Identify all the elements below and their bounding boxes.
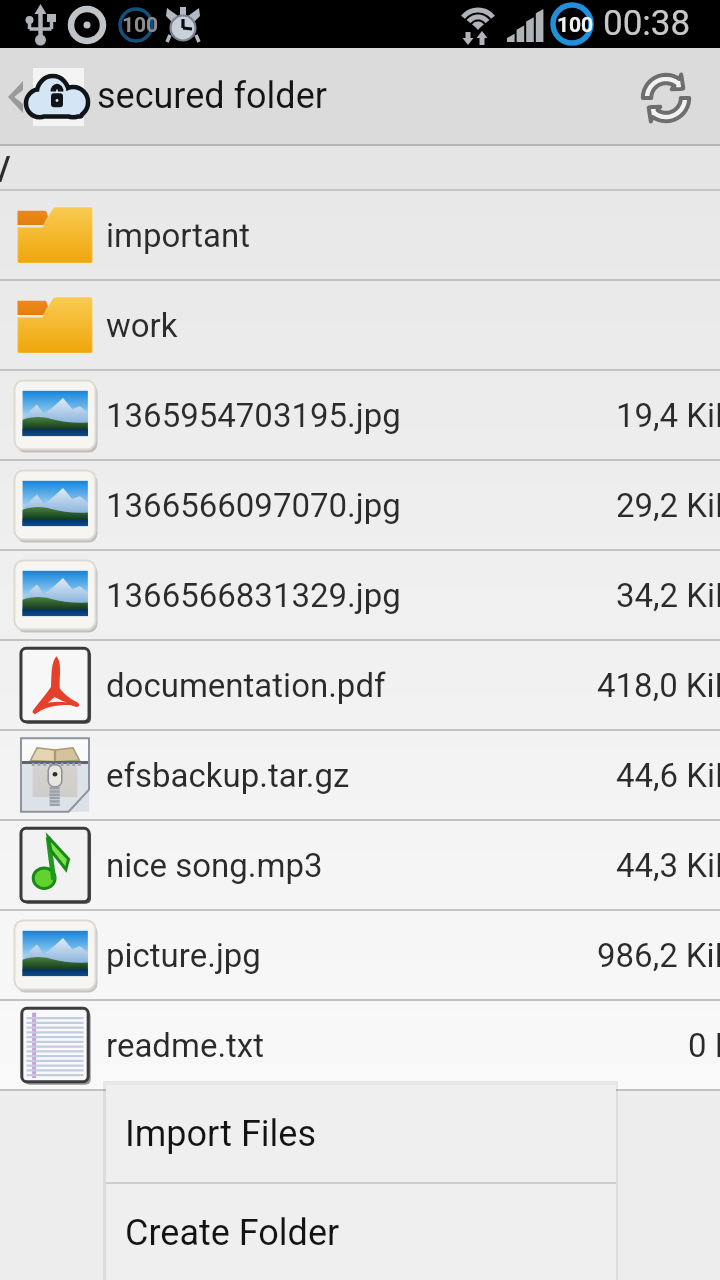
staticText: secured folder bbox=[97, 75, 327, 117]
staticText: important bbox=[106, 216, 251, 255]
staticText: 19,4 KiB bbox=[616, 396, 720, 435]
button[interactable]: Create Folder bbox=[106, 1184, 616, 1280]
button[interactable]: picture.jpg bbox=[0, 911, 720, 999]
button[interactable]: nice song.mp3 bbox=[0, 821, 720, 909]
staticText: 100 bbox=[122, 13, 159, 38]
staticText: documentation.pdf bbox=[106, 666, 386, 705]
button[interactable]: 1366566097070.jpg bbox=[0, 461, 720, 549]
button[interactable]: documentation.pdf bbox=[0, 641, 720, 729]
button[interactable]: Refresh bbox=[624, 48, 720, 144]
staticText: 0 B bbox=[688, 1026, 720, 1065]
staticText: nice song.mp3 bbox=[106, 846, 323, 885]
button[interactable]: Import Files bbox=[106, 1085, 616, 1182]
staticText: 00:38 bbox=[603, 3, 691, 44]
button[interactable]: 1365954703195.jpg bbox=[0, 371, 720, 459]
button[interactable]: readme.txt bbox=[0, 1001, 720, 1089]
staticText: 418,0 KiB bbox=[597, 666, 720, 705]
staticText: 1366566831329.jpg bbox=[106, 576, 401, 615]
staticText: Import Files bbox=[125, 1113, 316, 1155]
staticText: 1365954703195.jpg bbox=[106, 396, 401, 435]
staticText: 100 bbox=[557, 13, 594, 38]
button[interactable]: 1366566831329.jpg bbox=[0, 551, 720, 639]
staticText: efsbackup.tar.gz bbox=[106, 756, 350, 795]
staticText: 1366566097070.jpg bbox=[106, 486, 401, 525]
staticText: 29,2 KiB bbox=[616, 486, 720, 525]
staticText: picture.jpg bbox=[106, 936, 261, 975]
button[interactable]: important bbox=[0, 191, 720, 279]
staticText: work bbox=[106, 306, 178, 345]
button[interactable]: efsbackup.tar.gz bbox=[0, 731, 720, 819]
staticText: / bbox=[0, 148, 11, 188]
button[interactable]: Up: secured folder bbox=[0, 48, 620, 144]
staticText: 986,2 KiB bbox=[597, 936, 720, 975]
staticText: 44,6 KiB bbox=[616, 756, 720, 795]
staticText: 34,2 KiB bbox=[616, 576, 720, 615]
button[interactable]: work bbox=[0, 281, 720, 369]
staticText: readme.txt bbox=[106, 1026, 265, 1065]
staticText: 44,3 KiB bbox=[616, 846, 720, 885]
staticText: Create Folder bbox=[125, 1212, 340, 1254]
